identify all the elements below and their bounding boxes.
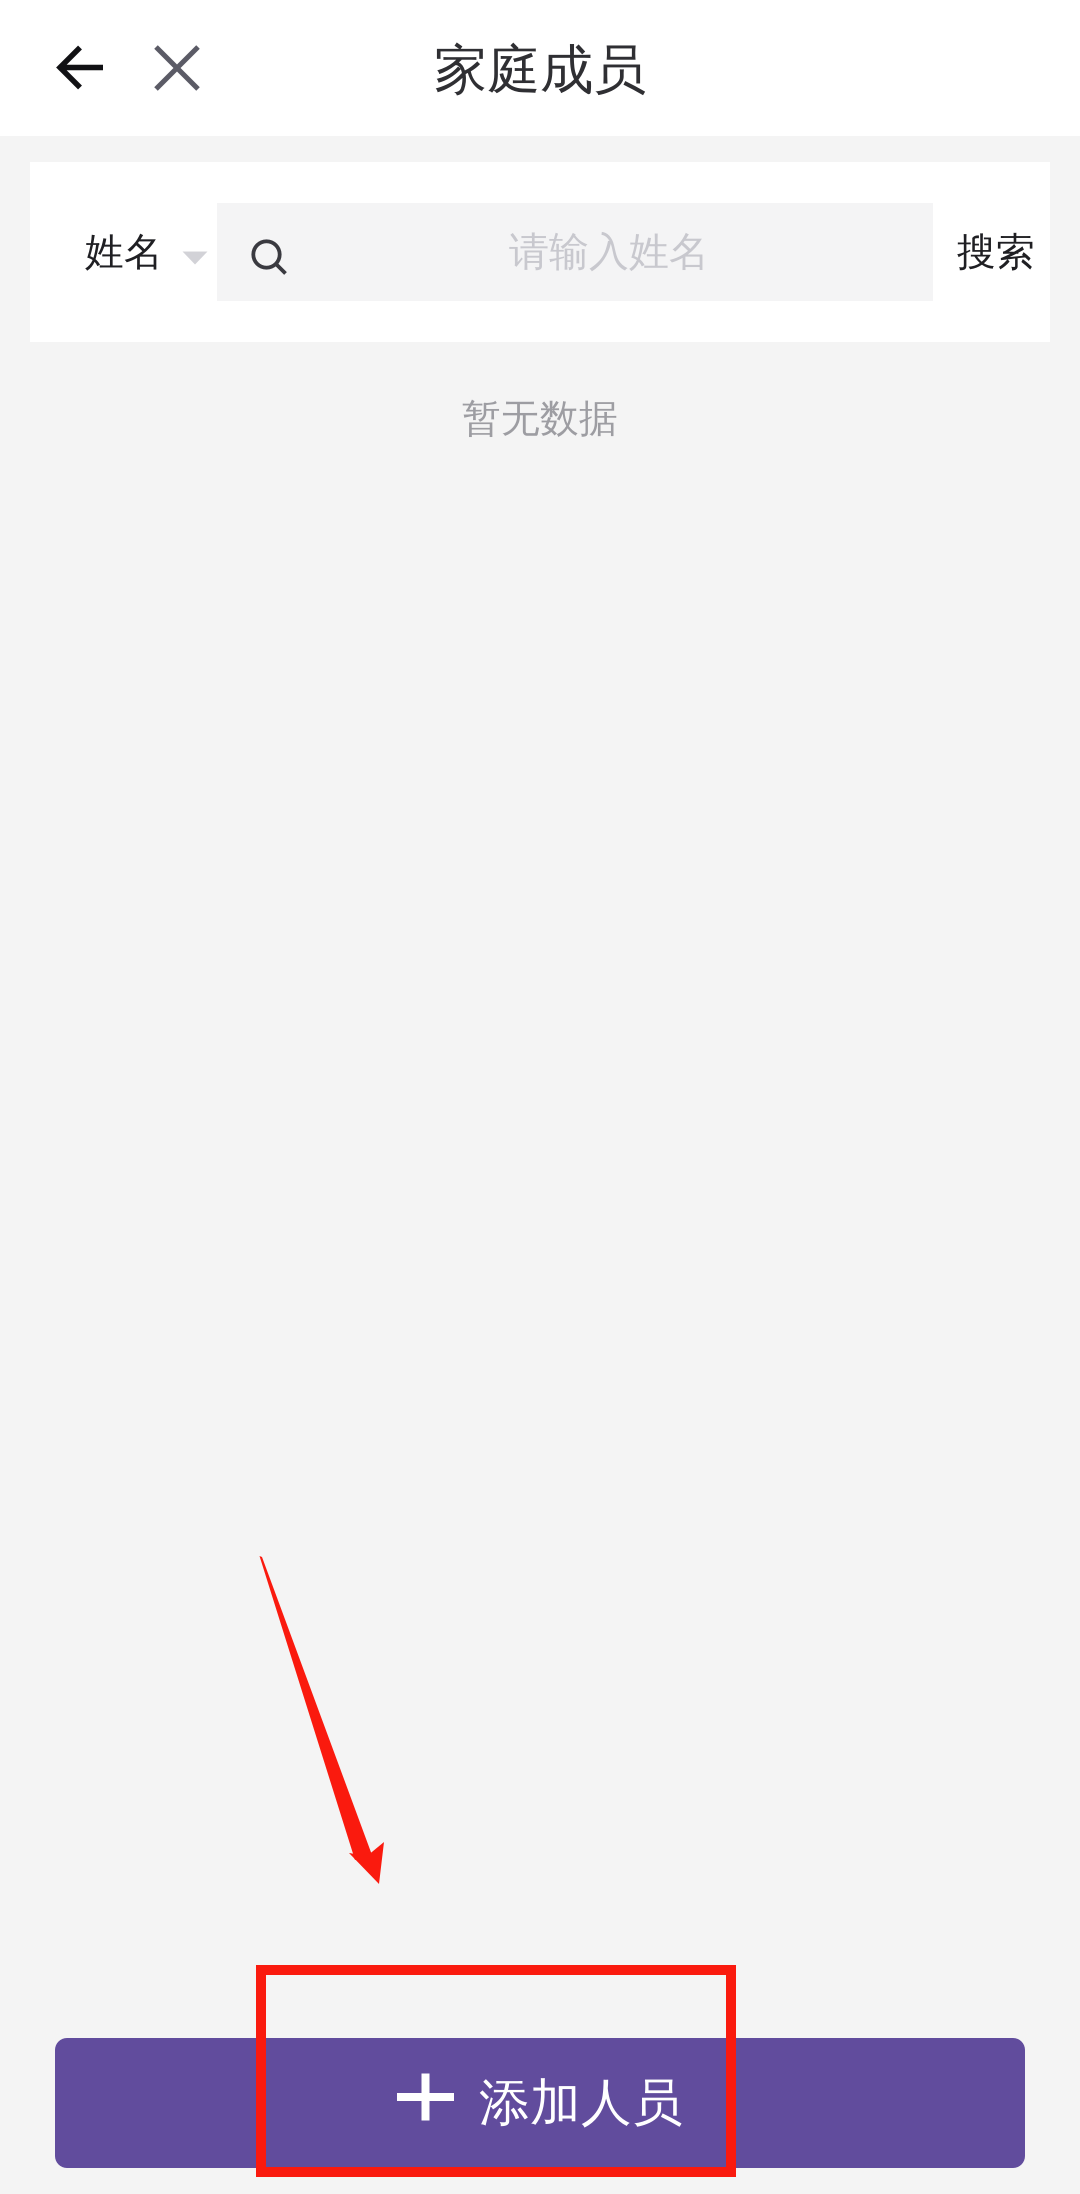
staticText: 姓名 [85,228,163,276]
staticText: 请输入姓名 [509,227,709,276]
button[interactable]: 返回 [41,22,121,114]
button[interactable]: 请输入姓名 [217,203,933,301]
button[interactable]: 姓名 [85,203,208,301]
staticText: 家庭成员 [434,37,646,103]
staticText: 暂无数据 [462,395,618,442]
button[interactable]: 搜索 [957,203,1035,301]
staticText: 搜索 [957,228,1035,276]
staticText: 添加人员 [479,2072,683,2134]
button[interactable]: 关闭 [121,22,233,114]
button[interactable]: 添加人员 [55,2038,1025,2168]
